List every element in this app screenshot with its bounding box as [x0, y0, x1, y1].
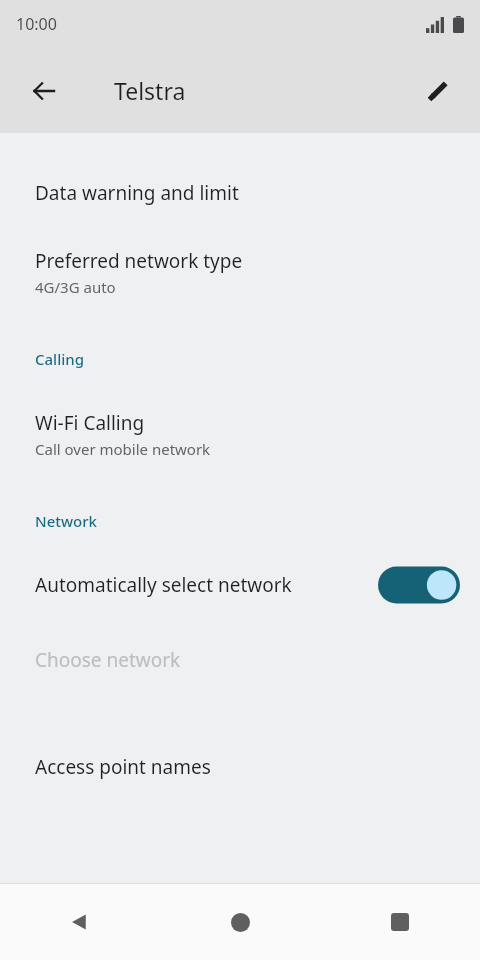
button[interactable]: Data warning and limit	[0, 180, 480, 206]
staticText: Data warning and limit	[35, 180, 239, 206]
staticText: 10:00	[16, 13, 57, 35]
staticText: Choose network	[35, 647, 181, 673]
button[interactable]: Edit	[414, 67, 462, 115]
button[interactable]: Preferred network type	[0, 248, 480, 297]
staticText: Telstra	[114, 75, 186, 106]
button[interactable]: Access point names	[0, 754, 480, 780]
button[interactable]: Back	[20, 67, 68, 115]
button[interactable]: Automatically select network	[0, 562, 480, 608]
staticText: 4G/3G auto	[35, 277, 116, 297]
button[interactable]: Recent apps	[320, 884, 480, 960]
button[interactable]: Wi-Fi Calling	[0, 410, 480, 459]
button[interactable]: Home	[160, 884, 320, 960]
staticText: Automatically select network	[35, 572, 368, 598]
staticText: Call over mobile network	[35, 439, 211, 459]
staticText: Wi-Fi Calling	[35, 410, 145, 436]
staticText: Network	[35, 511, 97, 531]
button[interactable]: Back	[0, 884, 160, 960]
staticText: Access point names	[35, 754, 211, 780]
staticText: Calling	[35, 349, 84, 369]
staticText: Preferred network type	[35, 248, 243, 274]
button: Choose network	[0, 647, 480, 673]
